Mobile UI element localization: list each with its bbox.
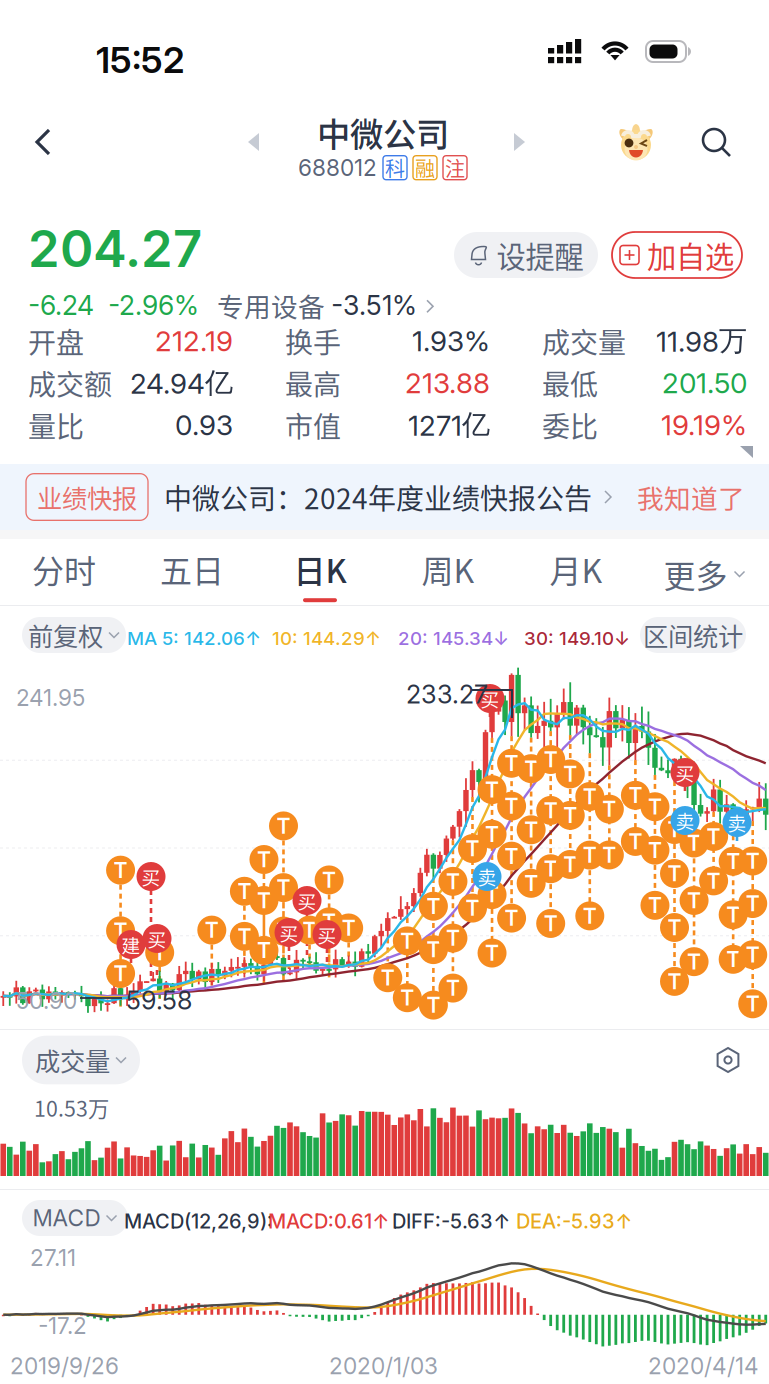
staticText: T — [322, 867, 336, 893]
staticText: 五日 — [160, 546, 224, 592]
staticText: T — [687, 830, 701, 856]
staticText: T — [205, 917, 219, 943]
staticText: 买 — [675, 759, 694, 786]
button[interactable]: 业绩快报 — [0, 464, 769, 530]
staticText: T — [746, 942, 760, 968]
staticText: 204.27 — [28, 218, 202, 279]
staticText: 1271亿 — [408, 407, 490, 443]
button[interactable]: 设提醒 — [454, 232, 598, 278]
staticText: 15:52 — [96, 38, 184, 82]
staticText: 周K — [421, 546, 474, 592]
staticText: T — [257, 937, 271, 963]
staticText: T — [746, 991, 760, 1017]
staticText: 10: 144.29↑ — [272, 627, 381, 650]
button[interactable]: 周K — [384, 541, 512, 607]
button[interactable]: 返回 — [12, 110, 76, 174]
staticText: T — [426, 992, 440, 1018]
staticText: 成交量 — [35, 1042, 110, 1078]
staticText: 开盘 — [28, 321, 84, 361]
button[interactable]: 前复权 — [22, 617, 126, 653]
staticText: T — [544, 797, 558, 823]
button[interactable]: MACD — [22, 1200, 128, 1236]
staticText: DEA:-5.93↑ — [516, 1209, 632, 1233]
staticText: T — [667, 817, 681, 842]
staticText: T — [583, 784, 597, 809]
staticText: 换手 — [285, 321, 341, 361]
staticText: T — [648, 794, 662, 820]
staticText: 0.93 — [175, 408, 233, 442]
staticText: T — [524, 817, 538, 843]
staticText: 20: 145.34↓ — [398, 627, 509, 650]
staticText: 最高 — [285, 363, 341, 403]
staticText: T — [446, 925, 460, 951]
staticText: T — [465, 836, 479, 861]
button[interactable]: 日K — [256, 541, 384, 607]
staticText: T — [485, 882, 499, 907]
staticText: 业绩快报 — [37, 479, 137, 515]
button[interactable]: 搜索 — [688, 114, 746, 172]
button[interactable]: 加自选 — [612, 232, 742, 278]
button[interactable]: 指标设置 — [723, 1037, 769, 1083]
staticText: T — [648, 837, 662, 863]
staticText: 融 — [415, 153, 435, 182]
button[interactable]: 智能助手 — [608, 114, 664, 170]
staticText: 30: 149.10↓ — [524, 627, 630, 650]
staticText: T — [153, 940, 167, 965]
staticText: T — [726, 848, 740, 874]
staticText: T — [687, 888, 701, 913]
staticText: 委比 — [542, 405, 598, 445]
staticText: 卖 — [477, 863, 496, 890]
staticText: 卖 — [727, 809, 746, 836]
button[interactable]: 分时 — [0, 541, 128, 607]
staticText: 设提醒 — [496, 234, 583, 276]
staticText: 11.98万 — [656, 323, 747, 359]
staticText: 688012 — [298, 154, 377, 181]
staticText: T — [707, 824, 721, 849]
staticText: T — [602, 796, 616, 822]
staticText: 212.19 — [155, 324, 233, 358]
staticText: T — [276, 813, 290, 839]
staticText: 区间统计 — [643, 617, 743, 653]
staticText: T — [257, 847, 271, 872]
staticText: T — [667, 915, 681, 940]
staticText: T — [381, 965, 395, 991]
staticText: T — [746, 848, 760, 874]
staticText: 1.93% — [412, 324, 490, 358]
staticText: T — [524, 870, 538, 896]
button[interactable]: 区间统计 — [640, 617, 746, 653]
staticText: 成交量 — [542, 321, 626, 361]
button[interactable]: 月K — [512, 541, 640, 607]
staticText: 2020/4/14 — [648, 1352, 759, 1380]
staticText: T — [114, 961, 128, 986]
staticText: DIFF:-5.63↑ — [392, 1209, 510, 1233]
staticText: 买 — [147, 925, 166, 952]
button[interactable]: 五日 — [128, 541, 256, 607]
staticText: T — [276, 918, 290, 944]
staticText: 分时 — [32, 546, 96, 592]
staticText: 买 — [480, 685, 499, 712]
staticText: T — [400, 985, 414, 1011]
button[interactable]: 更多 — [640, 541, 769, 607]
staticText: -6.24 — [28, 289, 94, 321]
staticText: 科 — [385, 153, 405, 182]
button[interactable]: 下一只 — [500, 122, 540, 162]
staticText: T — [426, 937, 440, 962]
staticText: T — [257, 887, 271, 913]
staticText: 中微公司： — [164, 477, 304, 517]
staticText: T — [563, 761, 577, 787]
staticText: T — [465, 895, 479, 921]
button[interactable]: 成交量 — [0, 1036, 118, 1084]
staticText: T — [583, 842, 597, 868]
staticText: T — [628, 828, 642, 854]
staticText: 59.58 — [126, 985, 192, 1016]
staticText: 建 — [121, 931, 140, 958]
staticText: 买 — [297, 887, 316, 914]
staticText: T — [114, 918, 128, 944]
staticText: 成交额 — [28, 363, 112, 403]
button[interactable]: 上一只 — [234, 122, 274, 162]
staticText: 月K — [549, 546, 602, 592]
staticText: T — [426, 893, 440, 919]
staticText: T — [237, 923, 251, 949]
staticText: T — [524, 756, 538, 781]
staticText: T — [342, 915, 356, 941]
